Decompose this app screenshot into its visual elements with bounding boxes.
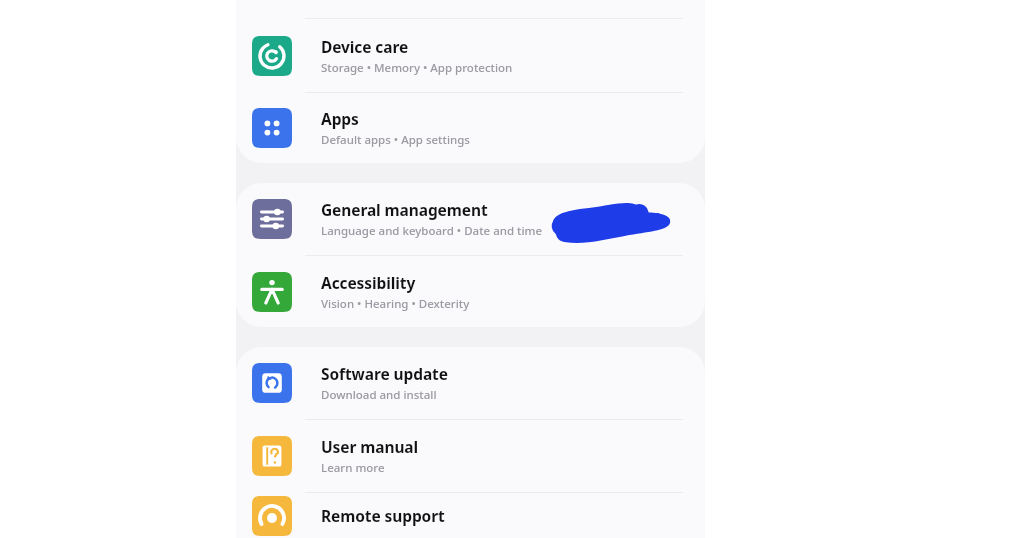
staticText: Accessibility: [321, 272, 416, 293]
button[interactable]: Apps: [236, 93, 705, 163]
other: Device care: [252, 36, 292, 76]
staticText: Default apps • App settings: [321, 132, 470, 148]
other: Software update: [252, 363, 292, 403]
staticText: Apps: [321, 108, 359, 129]
staticText: Device care: [321, 36, 409, 57]
button[interactable]: Software update: [236, 347, 705, 419]
other: Accessibility: [252, 272, 292, 312]
staticText: Software update: [321, 363, 448, 384]
button[interactable]: Accessibility: [236, 256, 705, 327]
staticText: Storage • Memory • App protection: [321, 60, 513, 76]
other: Apps: [252, 108, 292, 148]
staticText: Remote support: [321, 505, 445, 526]
other: User manual: [252, 436, 292, 476]
button[interactable]: User manual: [236, 420, 705, 492]
staticText: Language and keyboard • Date and time: [321, 223, 543, 239]
button[interactable]: Device care: [236, 20, 705, 92]
button[interactable]: General management: [236, 183, 705, 255]
other: General management: [252, 199, 292, 239]
other: Remote support: [252, 496, 292, 536]
staticText: Vision • Hearing • Dexterity: [321, 296, 470, 312]
button[interactable]: Remote support: [236, 493, 705, 538]
staticText: Download and install: [321, 387, 437, 403]
staticText: Learn more: [321, 460, 385, 476]
staticText: User manual: [321, 436, 419, 457]
staticText: General management: [321, 199, 488, 220]
